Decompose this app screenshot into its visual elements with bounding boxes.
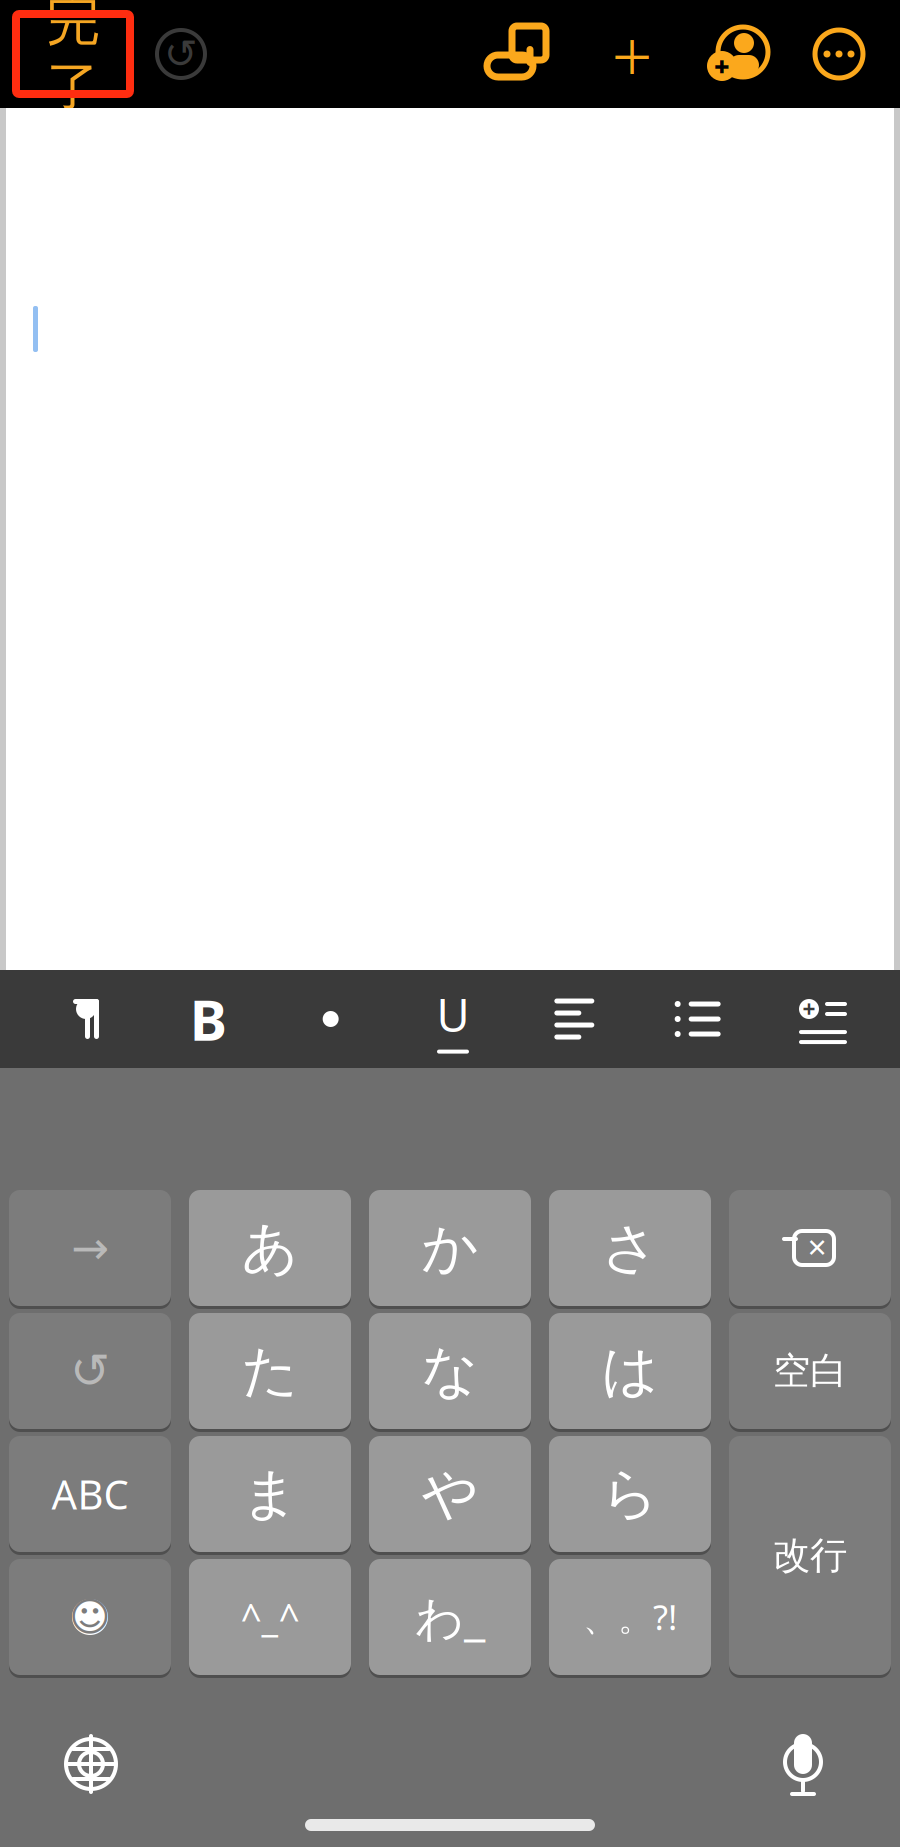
- staticText: +: [802, 994, 815, 1024]
- button[interactable]: Dictate: [758, 1719, 848, 1809]
- staticText: は: [601, 1337, 658, 1405]
- button[interactable]: Underline: [421, 970, 485, 1068]
- button[interactable]: ↺: [9, 1313, 171, 1429]
- staticText: か: [421, 1214, 478, 1282]
- button[interactable]: 完了: [16, 14, 130, 94]
- staticText: ^_^: [240, 1592, 299, 1642]
- staticText: 改行: [773, 1533, 847, 1578]
- button[interactable]: Bold: [176, 970, 240, 1068]
- button[interactable]: Paragraph style: [54, 970, 118, 1068]
- staticText: ✕: [806, 1234, 827, 1262]
- staticText: +: [611, 6, 652, 102]
- staticText: な: [421, 1337, 478, 1405]
- staticText: →: [71, 1222, 109, 1274]
- button[interactable]: か: [369, 1190, 531, 1306]
- button[interactable]: ABC: [9, 1436, 171, 1552]
- staticText: ↺: [70, 1344, 110, 1398]
- button[interactable]: Insert: [604, 24, 660, 84]
- button[interactable]: Bullet: [299, 970, 363, 1068]
- staticText: B: [190, 982, 227, 1056]
- button[interactable]: な: [369, 1313, 531, 1429]
- button[interactable]: Undo: [154, 27, 208, 81]
- button[interactable]: さ: [549, 1190, 711, 1306]
- staticText: た: [241, 1337, 298, 1405]
- staticText: わ_: [415, 1585, 485, 1649]
- staticText: ABC: [51, 1467, 128, 1520]
- button[interactable]: は: [549, 1313, 711, 1429]
- button[interactable]: Next keyboard: [46, 1719, 136, 1809]
- button[interactable]: Alignment: [543, 970, 607, 1068]
- staticText: ま: [241, 1460, 298, 1528]
- staticText: あ: [241, 1214, 298, 1282]
- button[interactable]: た: [189, 1313, 351, 1429]
- staticText: U: [436, 984, 469, 1045]
- staticText: +: [714, 48, 730, 84]
- staticText: や: [421, 1460, 478, 1528]
- button[interactable]: Collaborate: [706, 23, 768, 85]
- staticText: 完了: [46, 0, 99, 119]
- button[interactable]: Insert row: [788, 970, 858, 1068]
- staticText: さ: [601, 1214, 658, 1282]
- button[interactable]: ☺: [9, 1559, 171, 1675]
- staticText: ☺: [69, 1594, 111, 1640]
- button[interactable]: や: [369, 1436, 531, 1552]
- button[interactable]: ^_^: [189, 1559, 351, 1675]
- button[interactable]: ま: [189, 1436, 351, 1552]
- button[interactable]: Markup: [490, 23, 550, 85]
- staticText: 空白: [773, 1348, 847, 1394]
- staticText: ↺: [164, 31, 198, 77]
- button[interactable]: あ: [189, 1190, 351, 1306]
- button[interactable]: More: [812, 27, 866, 81]
- staticText: 、。?!: [583, 1594, 677, 1640]
- staticText: ら: [601, 1460, 658, 1528]
- button[interactable]: ら: [549, 1436, 711, 1552]
- button[interactable]: 改行: [729, 1436, 891, 1675]
- button[interactable]: →: [9, 1190, 171, 1306]
- button[interactable]: ✕: [729, 1190, 891, 1306]
- button[interactable]: 空白: [729, 1313, 891, 1429]
- button[interactable]: 、。?!: [549, 1559, 711, 1675]
- button[interactable]: わ_: [369, 1559, 531, 1675]
- button[interactable]: Lists: [666, 970, 730, 1068]
